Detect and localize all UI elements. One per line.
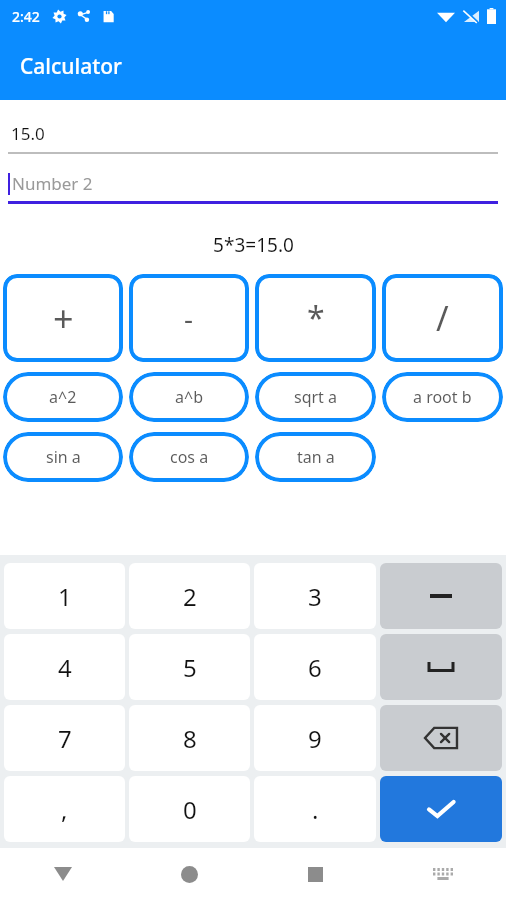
button[interactable]: 4 — [4, 634, 125, 700]
button[interactable]: Backspace — [380, 705, 502, 771]
staticText: Calculator — [20, 52, 122, 81]
staticText: 6 — [308, 651, 322, 684]
staticText: 7 — [58, 722, 72, 755]
staticText: + — [53, 294, 74, 343]
button[interactable]: . — [254, 776, 376, 842]
staticText: * — [307, 296, 325, 340]
button[interactable]: 6 — [254, 634, 376, 700]
button[interactable]: Space — [380, 634, 502, 700]
button[interactable]: sin a — [3, 432, 123, 482]
staticText: sin a — [46, 446, 81, 468]
staticText: 3 — [308, 580, 322, 613]
staticText: 5*3=15.0 — [213, 232, 294, 258]
button[interactable]: 2 — [129, 563, 250, 629]
staticText: 0 — [183, 793, 197, 826]
staticText: a root b — [413, 386, 472, 408]
button[interactable]: * — [255, 274, 376, 362]
button[interactable]: 0 — [129, 776, 250, 842]
staticText: 2 — [183, 580, 197, 613]
button[interactable]: a^b — [129, 372, 249, 422]
button[interactable]: Switch keyboard — [379, 848, 506, 900]
button[interactable]: Done — [380, 776, 502, 842]
staticText: - — [184, 299, 194, 337]
button[interactable]: 7 — [4, 705, 125, 771]
staticText: cos a — [170, 446, 209, 468]
button[interactable]: Minus — [380, 563, 502, 629]
button[interactable]: tan a — [255, 432, 376, 482]
staticText: 9 — [308, 722, 322, 755]
button[interactable]: Back — [0, 848, 126, 900]
staticText: 5 — [183, 651, 197, 684]
staticText: 15.0 — [11, 122, 45, 145]
staticText: a^b — [175, 386, 203, 408]
staticText: a^2 — [49, 386, 77, 408]
button[interactable]: Home — [126, 848, 252, 900]
staticText: 2:42 — [12, 7, 40, 26]
staticText: , — [61, 793, 68, 826]
staticText: sqrt a — [294, 386, 338, 408]
staticText: . — [312, 793, 319, 826]
button[interactable]: a root b — [382, 372, 503, 422]
button[interactable]: sqrt a — [255, 372, 376, 422]
button[interactable]: a^2 — [3, 372, 123, 422]
button[interactable]: - — [129, 274, 249, 362]
button[interactable]: 9 — [254, 705, 376, 771]
staticText: Number 2 — [12, 172, 93, 195]
staticText: tan a — [297, 446, 335, 468]
staticText: 8 — [183, 722, 197, 755]
button[interactable]: + — [3, 274, 123, 362]
button[interactable]: / — [382, 274, 503, 362]
button[interactable]: , — [4, 776, 125, 842]
button[interactable]: 1 — [4, 563, 125, 629]
button[interactable]: 5 — [129, 634, 250, 700]
staticText: 1 — [58, 580, 72, 613]
button[interactable]: 8 — [129, 705, 250, 771]
staticText: 4 — [58, 651, 72, 684]
button[interactable]: 3 — [254, 563, 376, 629]
button[interactable]: Recents — [252, 848, 379, 900]
staticText: / — [436, 295, 449, 341]
button[interactable]: cos a — [129, 432, 249, 482]
